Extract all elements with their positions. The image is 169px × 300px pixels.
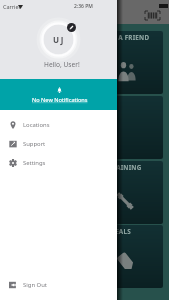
- button[interactable]: Edit profile: [67, 23, 76, 32]
- button[interactable]: Scan barcode: [145, 11, 160, 20]
- staticText: Carrier: [3, 3, 21, 10]
- staticText: MEALS: [109, 227, 131, 236]
- button[interactable]: No New Notifications: [0, 79, 117, 110]
- staticText: TRAINING: [108, 163, 142, 172]
- staticText: Settings: [23, 159, 46, 167]
- button[interactable]: TRAINING: [6, 161, 163, 224]
- button[interactable]: Sign Out: [0, 275, 117, 294]
- staticText: 2:36 PM: [74, 3, 93, 10]
- button[interactable]: UJ: [42, 23, 75, 56]
- button[interactable]: Settings: [0, 153, 117, 172]
- button[interactable]: INVITE A FRIEND: [6, 31, 163, 94]
- button[interactable]: Locations: [0, 115, 117, 134]
- button[interactable]: MEALS: [6, 225, 163, 288]
- staticText: REWARDS: [60, 98, 92, 107]
- staticText: Locations: [23, 121, 50, 129]
- button[interactable]: Support: [0, 134, 117, 153]
- staticText: UJ: [53, 34, 65, 45]
- staticText: Hello, User!: [44, 60, 80, 69]
- staticText: No New Notifications: [32, 96, 88, 104]
- staticText: INVITE A FRIEND: [94, 33, 150, 42]
- staticText: Support: [23, 140, 46, 148]
- button[interactable]: REWARDS: [6, 96, 163, 159]
- staticText: Sign Out: [23, 281, 47, 289]
